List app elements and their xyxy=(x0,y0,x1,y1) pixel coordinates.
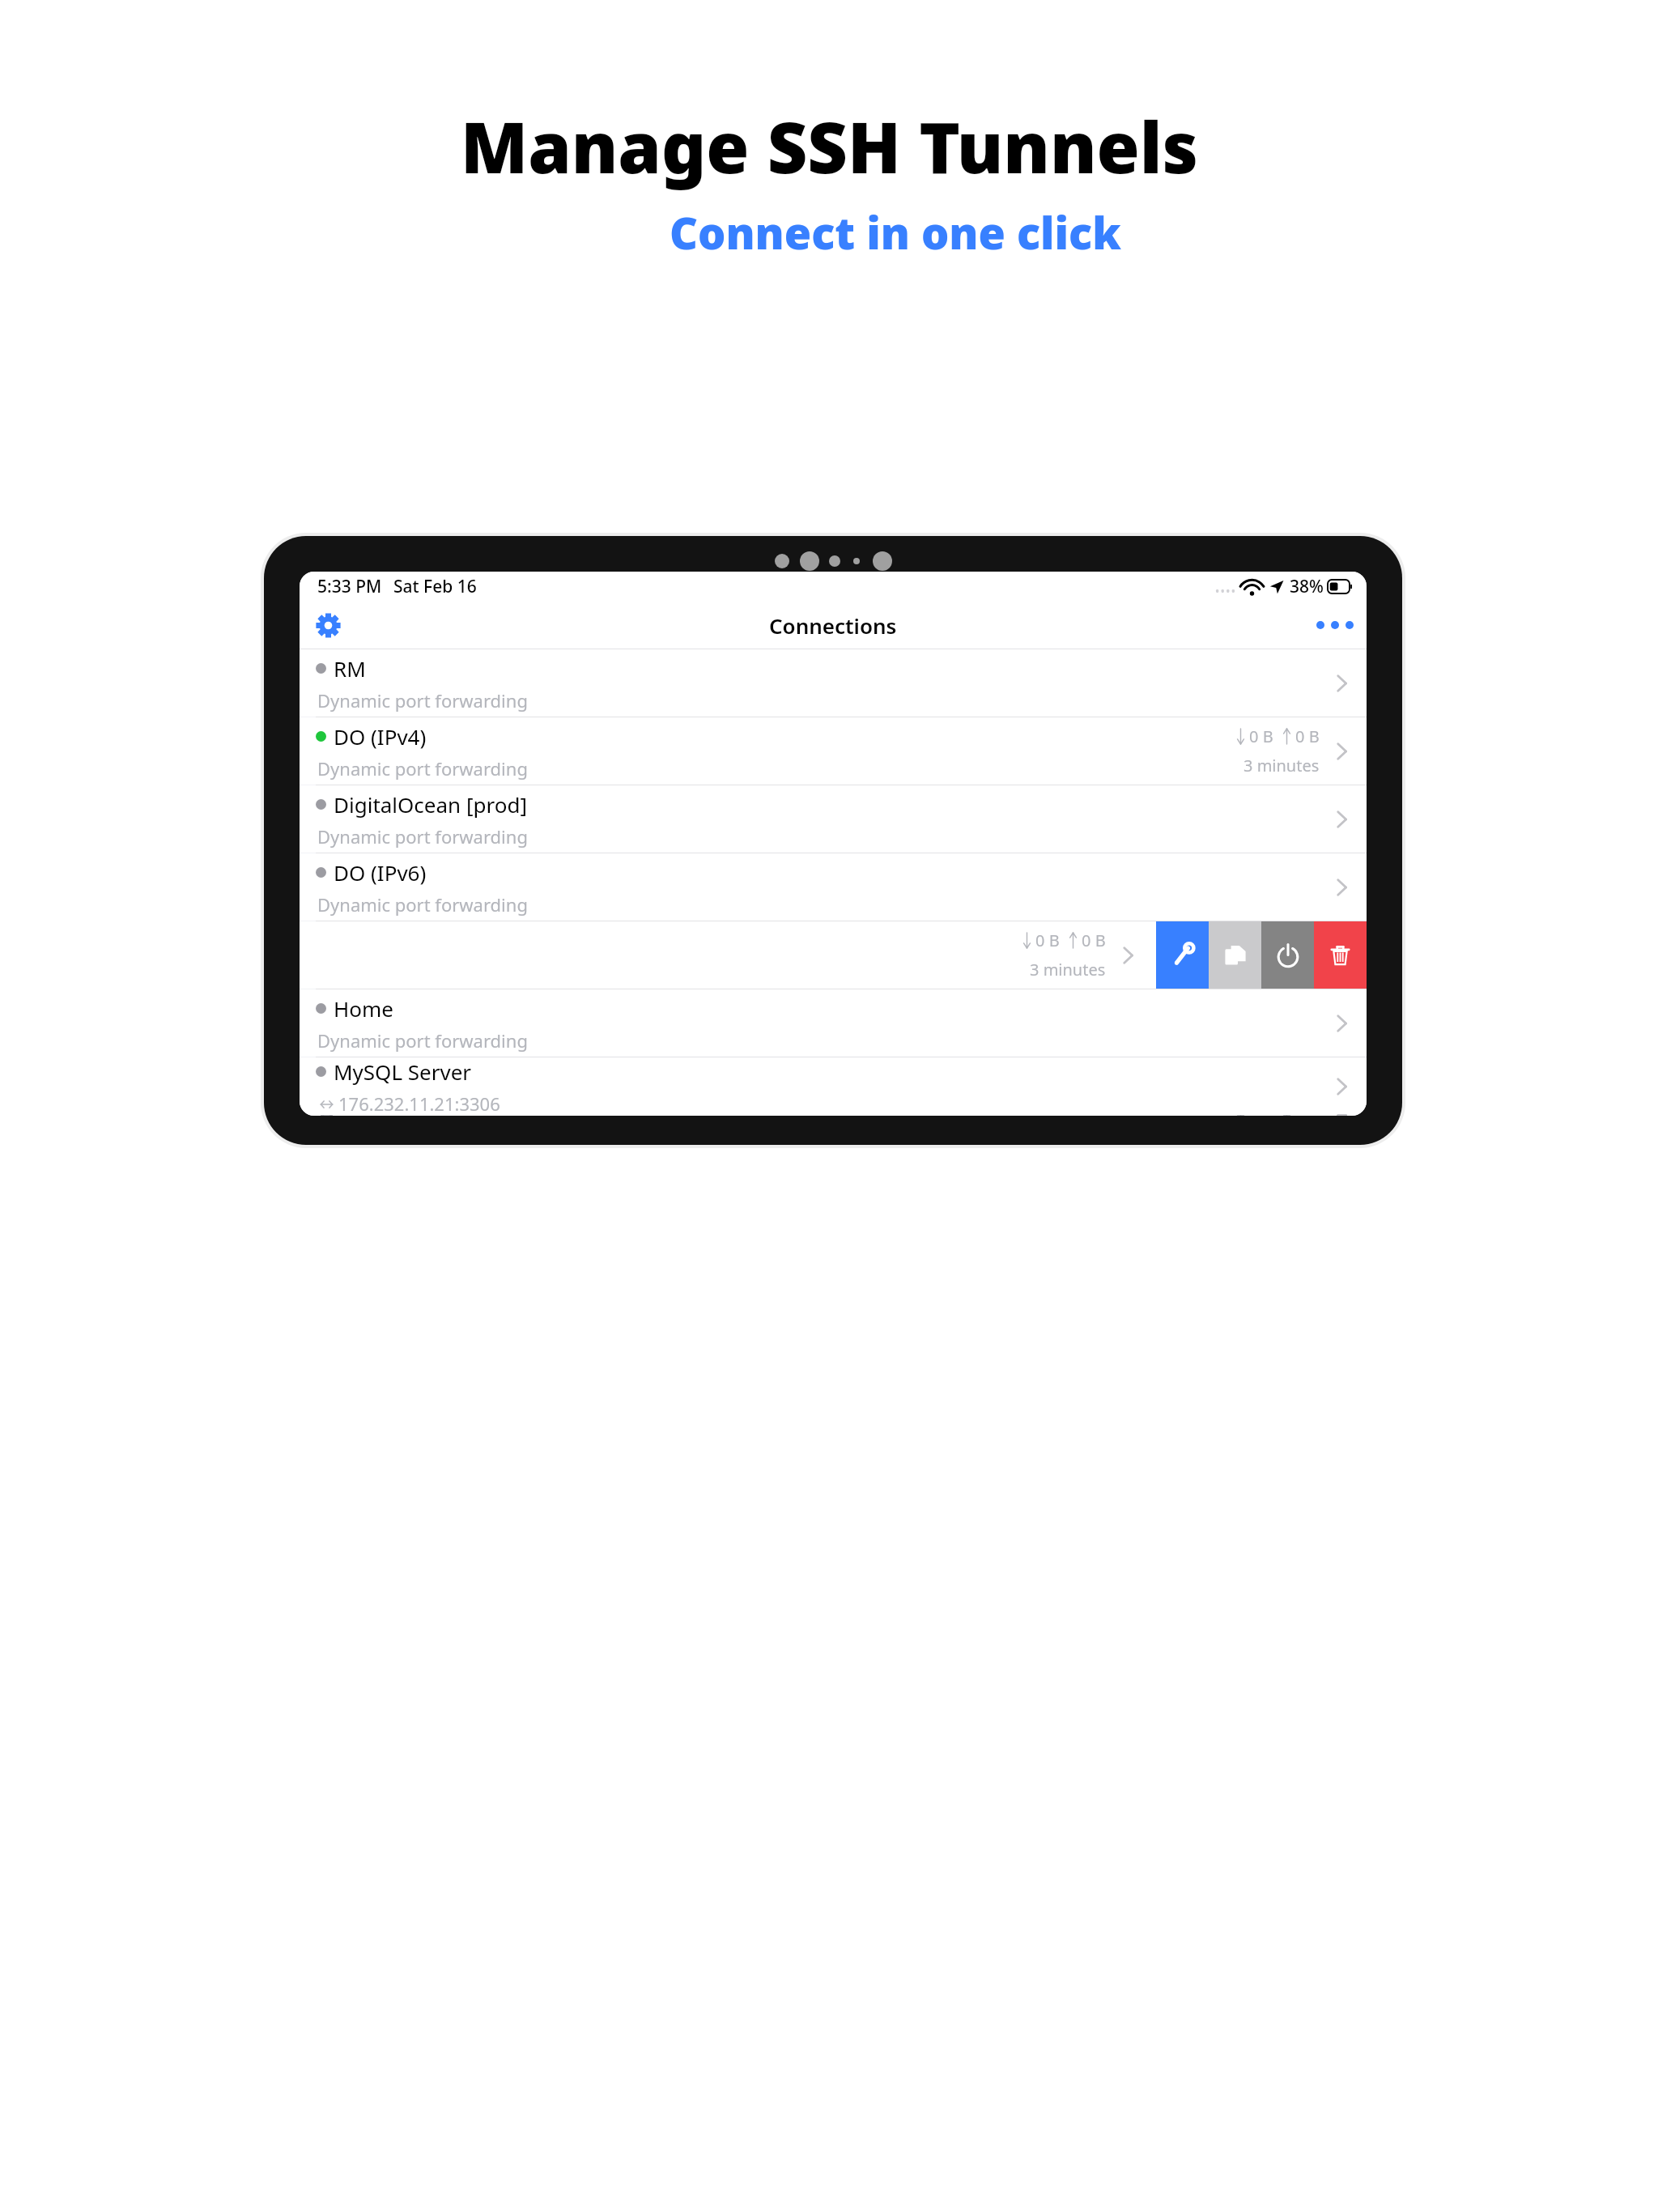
staticText: DO (IPv6) xyxy=(334,858,427,887)
staticText: 3 minutes xyxy=(1030,959,1106,981)
button[interactable]: MySQL Server xyxy=(300,1057,1367,1116)
button[interactable]: Duplicate xyxy=(1209,921,1261,989)
button[interactable]: DO (IPv4) xyxy=(300,717,1367,785)
staticText: Dynamic port forwarding xyxy=(317,892,528,917)
staticText: 5:33 PM xyxy=(317,575,382,598)
staticText: Dynamic port forwarding xyxy=(317,688,528,713)
button[interactable]: Delete xyxy=(1314,921,1367,989)
staticText: 0 B xyxy=(1035,929,1060,951)
button[interactable]: More options xyxy=(1313,603,1357,647)
staticText: 38% xyxy=(1290,575,1324,598)
button[interactable]: Edit xyxy=(1156,921,1209,989)
button[interactable]: Home xyxy=(300,989,1367,1057)
staticText: Connect in one click xyxy=(670,202,1121,262)
staticText: RM xyxy=(334,654,366,683)
staticText: 0 B xyxy=(1249,725,1273,747)
staticText: 0 B xyxy=(1295,725,1320,747)
staticText: Dynamic port forwarding xyxy=(317,824,528,849)
staticText: Home xyxy=(334,994,393,1023)
staticText: 176.232.11.21:3306 xyxy=(338,1091,500,1116)
staticText: Dynamic port forwarding xyxy=(317,1028,528,1053)
staticText: Sat Feb 16 xyxy=(393,575,477,598)
staticText: DigitalOcean [prod] xyxy=(334,790,527,819)
staticText: MySQL Server xyxy=(334,1057,472,1086)
button[interactable]: Disconnect xyxy=(1261,921,1314,989)
staticText: 3 minutes xyxy=(1243,755,1320,776)
staticText: 0 B xyxy=(1082,929,1106,951)
staticText: DO (IPv4) xyxy=(334,722,427,751)
staticText: Dynamic port forwarding xyxy=(317,756,528,781)
button[interactable]: DigitalOcean [prod] xyxy=(300,785,1367,853)
button[interactable]: DO (IPv6) xyxy=(300,853,1367,921)
button[interactable]: Settings xyxy=(306,603,350,647)
staticText: Connections xyxy=(769,611,897,640)
button[interactable]: RM xyxy=(300,649,1367,717)
staticText: Manage SSH Tunnels xyxy=(461,99,1198,194)
